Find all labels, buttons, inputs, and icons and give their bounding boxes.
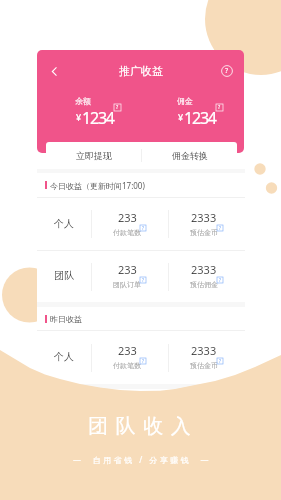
staticText: 付款笔数 [113,228,141,237]
staticText: 个人 [54,217,74,230]
button[interactable]: 团队 [37,251,245,302]
staticText: ? [142,225,144,231]
staticText: 233 [118,210,137,225]
staticText: 付款笔数 [113,361,141,370]
staticText: — 自用省钱 / 分享赚钱 — [73,454,211,465]
staticText: ? [225,66,229,76]
staticText: 预估金币 [190,228,218,237]
button[interactable]: Back [43,60,65,82]
staticText: 余额 [75,96,91,106]
staticText: ? [219,358,221,364]
staticText: 233 [118,262,137,277]
staticText: ? [142,358,144,364]
staticText: ¥ [178,111,184,123]
button[interactable]: Info [217,358,223,364]
button[interactable]: 立即提现 [46,142,141,169]
button[interactable]: 个人 [37,331,245,384]
staticText: ? [142,277,144,283]
button[interactable]: Info [140,277,146,283]
staticText: 233 [118,343,137,358]
staticText: 预估佣金 [190,280,218,289]
button[interactable]: Info [140,225,146,231]
staticText: 佣金转换 [172,150,208,161]
staticText: 1234 [82,107,114,129]
staticText: ? [219,225,221,231]
button[interactable]: Info [140,358,146,364]
staticText: 立即提现 [76,150,112,161]
staticText: 昨日收益 [50,314,82,324]
staticText: 2333 [191,343,217,358]
button[interactable]: Info [114,104,121,111]
button[interactable]: Info [217,225,223,231]
button[interactable]: Info [216,104,223,111]
staticText: 个人 [54,350,74,363]
staticText: ? [116,104,119,111]
staticText: 团队订单 [113,280,141,289]
button[interactable]: 佣金转换 [142,142,237,169]
staticText: 佣金 [177,96,193,106]
button[interactable]: 个人 [37,198,245,250]
button[interactable]: Info [217,277,223,283]
staticText: ¥ [76,111,82,123]
staticText: 团队收入 [88,414,199,439]
staticText: 今日收益（更新时间17:00) [50,180,145,191]
button[interactable]: Help [216,60,238,82]
staticText: 1234 [184,107,216,129]
staticText: 推广收益 [119,64,163,78]
staticText: ? [218,104,221,111]
staticText: 预估金币 [190,361,218,370]
staticText: 团队 [54,269,74,282]
staticText: 2333 [191,262,217,277]
staticText: ? [219,277,221,283]
staticText: 2333 [191,210,217,225]
